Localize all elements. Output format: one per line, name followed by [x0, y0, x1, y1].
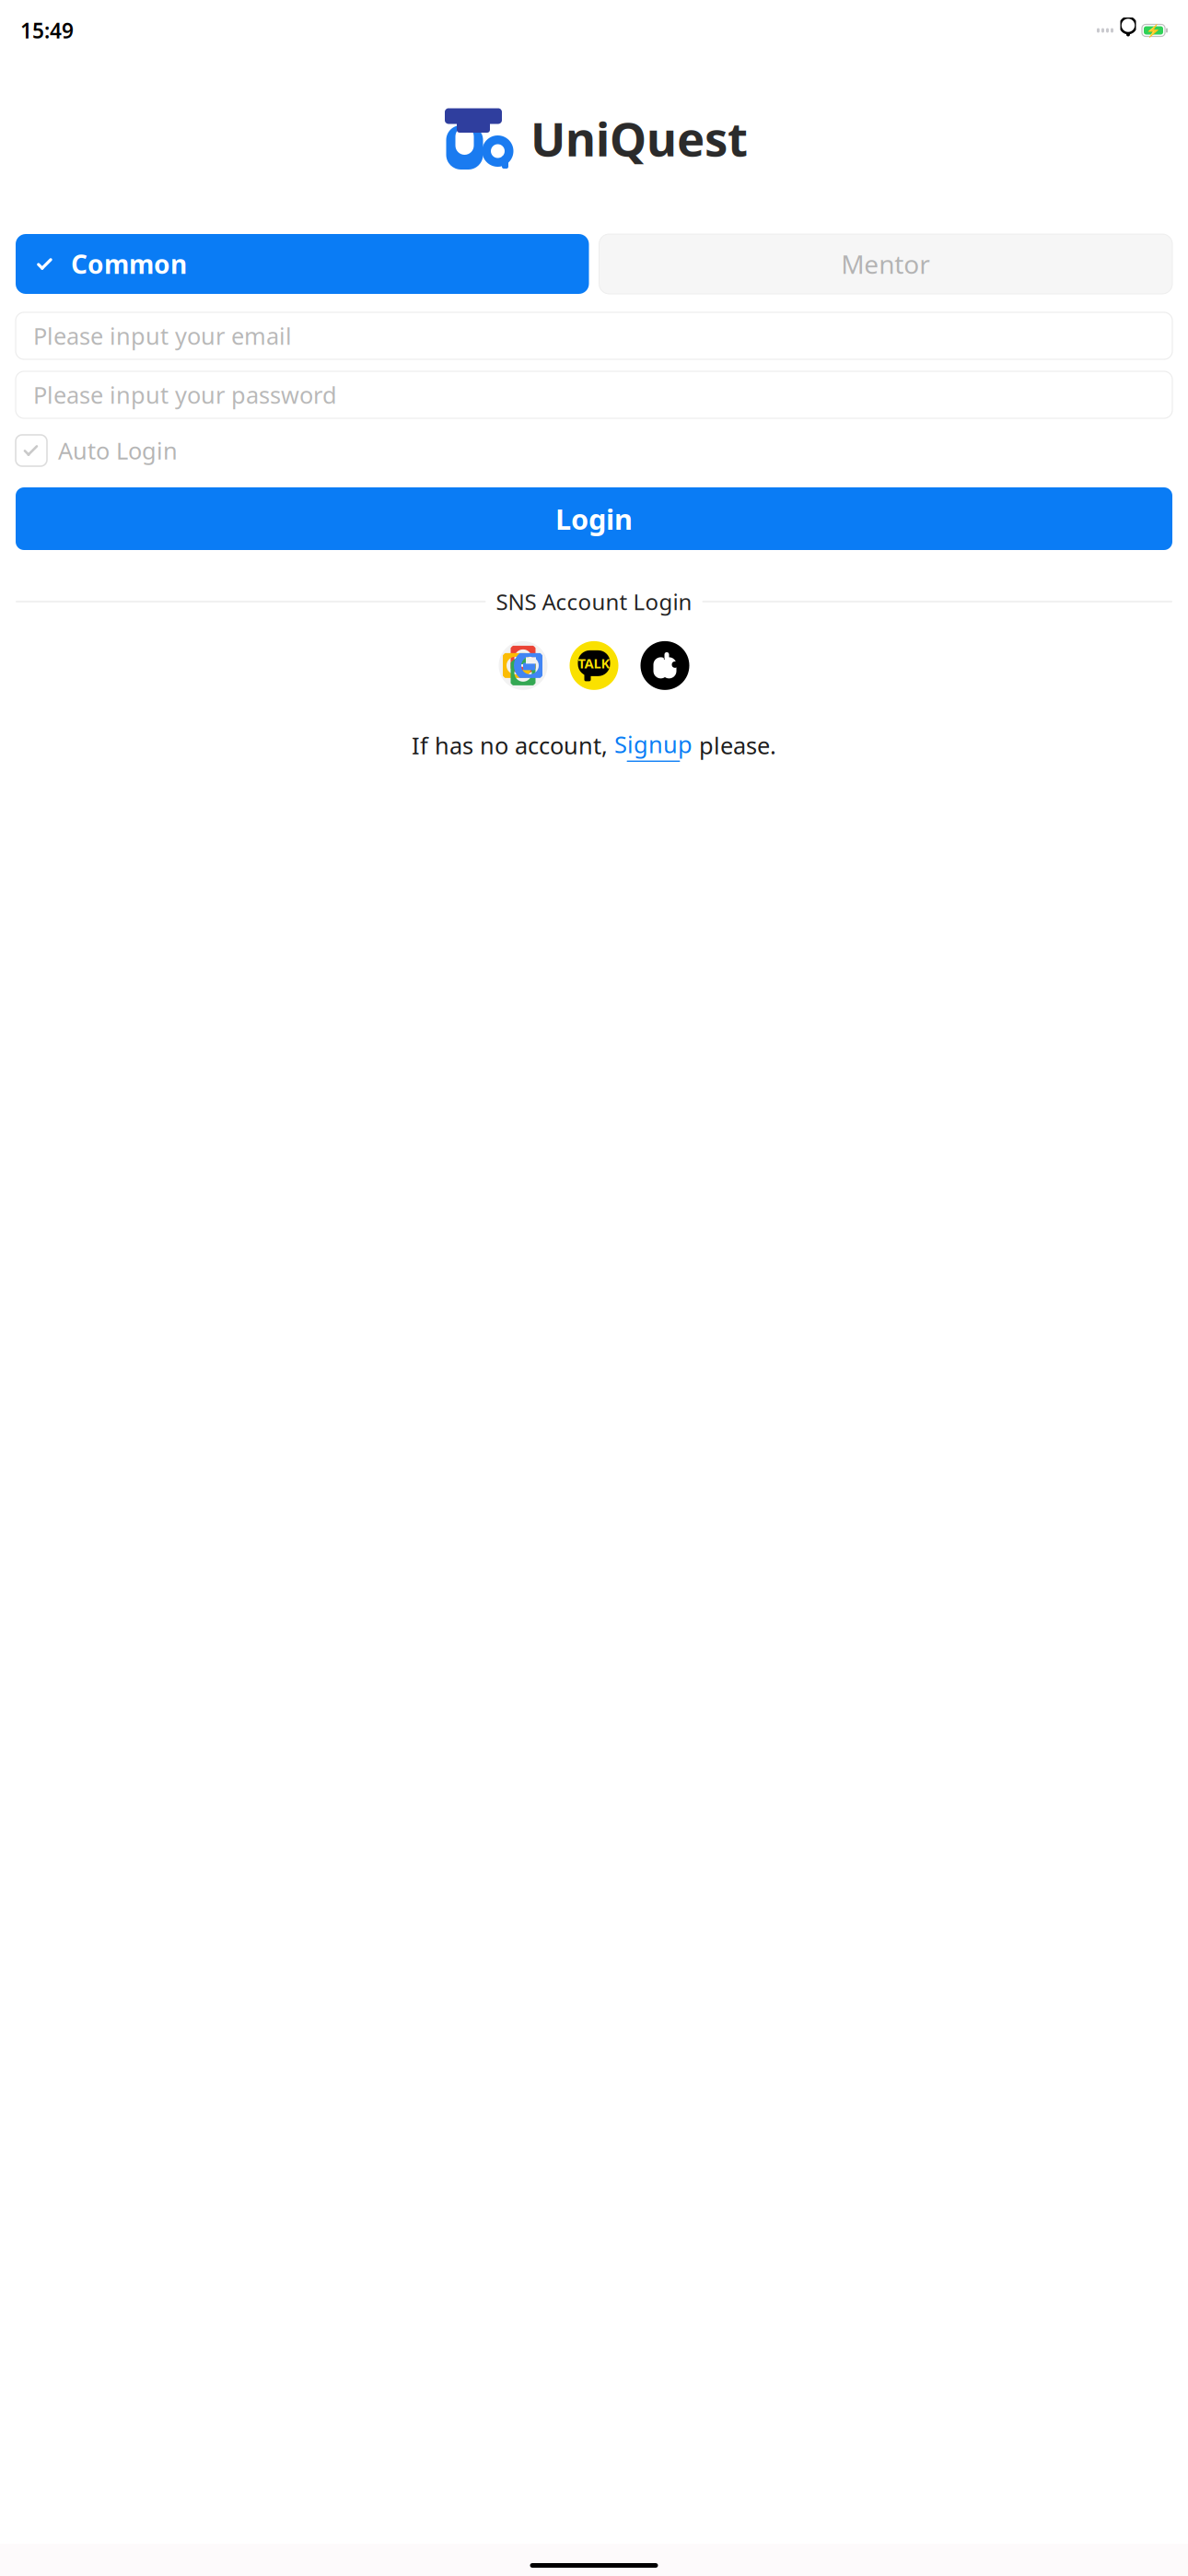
staticText: Please input your password	[33, 379, 337, 410]
staticText: please.	[693, 730, 776, 761]
staticText: Auto Login	[58, 435, 178, 466]
button[interactable]: Auto Login	[16, 435, 47, 466]
staticText: Login	[555, 500, 633, 537]
button[interactable]: Sign in with Apple	[641, 641, 689, 690]
staticText: ⚡	[1146, 23, 1161, 37]
staticText: Mentor	[841, 247, 930, 281]
staticText: 15:49	[20, 16, 74, 44]
staticText: Signup	[614, 729, 693, 760]
staticText: TALK	[578, 654, 610, 672]
staticText: Common	[71, 247, 187, 281]
staticText: SNS Account Login	[496, 587, 692, 616]
button[interactable]: Sign in with Kakao Talk	[570, 641, 618, 690]
staticText: Please input your email	[33, 320, 292, 351]
staticText: If has no account,	[412, 730, 614, 761]
button[interactable]: Signup	[614, 729, 693, 762]
button[interactable]: Login	[16, 487, 1172, 550]
button[interactable]: Mentor	[599, 234, 1172, 294]
button[interactable]: Sign in with Google	[499, 641, 547, 690]
staticText: UniQuest	[530, 107, 748, 169]
button[interactable]: Common	[16, 234, 589, 294]
